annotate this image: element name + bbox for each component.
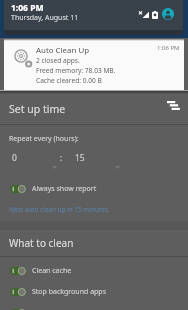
button[interactable]: 15 (64, 149, 122, 166)
staticText: Always show report (32, 184, 97, 194)
button[interactable]: Always show report (10, 181, 188, 197)
staticText: Stop background apps (32, 287, 107, 297)
button[interactable]: 0 (4, 149, 59, 166)
staticText: Set up time (9, 102, 66, 116)
staticText: Thursday, August 11 (11, 13, 79, 23)
button[interactable]: Auto Clean Up (4, 38, 184, 91)
staticText: 2 closed apps. (36, 56, 80, 65)
other: Battery (152, 11, 158, 19)
staticText: Cache cleared: 0.00 B (36, 76, 102, 85)
staticText: 0 (12, 152, 17, 164)
button[interactable]: Sort order (160, 94, 184, 116)
staticText: Clean cache (32, 266, 72, 276)
button[interactable]: Clean cache (10, 263, 188, 279)
button[interactable]: Stop background apps (10, 284, 188, 300)
button[interactable]: Next auto clean up in 15 minutes. (9, 205, 110, 214)
staticText: 1:06 PM (157, 44, 180, 52)
staticText: : (60, 152, 63, 163)
staticText: 15 (75, 152, 85, 164)
button[interactable]: What to clean (0, 230, 188, 256)
staticText: What to clean (9, 236, 74, 250)
staticText: Freed memory: 78.03 MB. (36, 66, 116, 75)
button[interactable]: Clear clipboard (10, 305, 188, 310)
button[interactable]: User account (162, 8, 174, 20)
staticText: 1:06 PM (11, 2, 44, 14)
staticText: Repeat every (hours): (9, 134, 79, 144)
other: No SIM card (139, 11, 149, 18)
button[interactable]: Set up time (0, 92, 188, 125)
staticText: Auto Clean Up (36, 45, 90, 56)
